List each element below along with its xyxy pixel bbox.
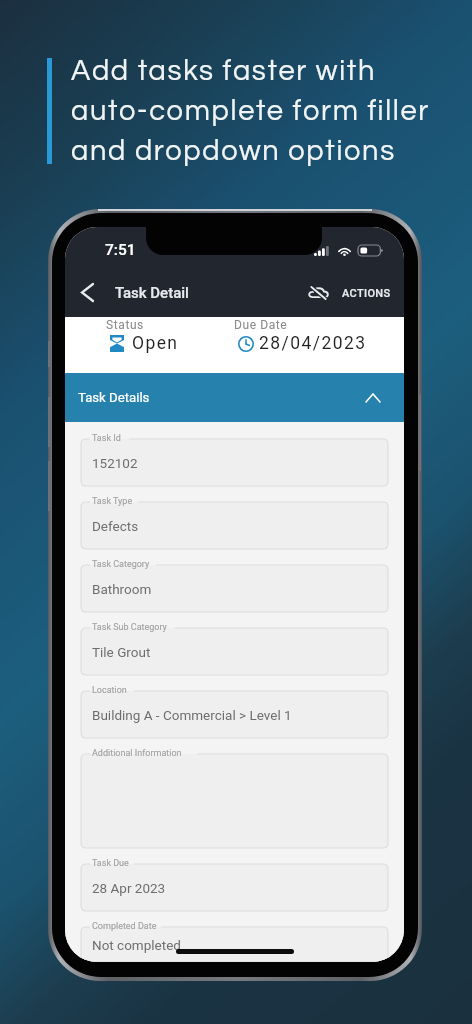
- staticText: Status: [106, 318, 144, 332]
- staticText: Bathroom: [92, 581, 152, 597]
- button[interactable]: Bathroom: [81, 565, 388, 612]
- staticText: Open: [132, 333, 179, 354]
- staticText: Completed Date: [92, 921, 157, 932]
- button[interactable]: Back: [67, 273, 107, 312]
- staticText: Task Due: [92, 858, 129, 869]
- staticText: Task Sub Category: [92, 622, 167, 633]
- staticText: Due Date: [234, 318, 288, 332]
- button[interactable]: Task Details: [65, 373, 404, 422]
- staticText: ACTIONS: [342, 287, 391, 300]
- staticText: Add tasks faster with auto-complete form…: [71, 56, 431, 166]
- staticText: 28 Apr 2023: [92, 880, 166, 896]
- staticText: 7:51: [105, 241, 136, 259]
- button[interactable]: Tile Grout: [81, 628, 388, 675]
- button[interactable]: 28 Apr 2023: [81, 864, 388, 911]
- staticText: Additional Information: [92, 748, 182, 759]
- button[interactable]: 152102: [81, 439, 388, 486]
- staticText: Not completed: [92, 937, 181, 953]
- staticText: Task Details: [78, 390, 150, 405]
- button[interactable]: Building A - Commercial > Level 1: [81, 691, 388, 738]
- button[interactable]: Not completed: [81, 927, 388, 962]
- staticText: Tile Grout: [92, 644, 151, 660]
- button[interactable]: ACTIONS: [296, 277, 404, 309]
- staticText: Building A - Commercial > Level 1: [92, 707, 292, 723]
- staticText: 152102: [92, 455, 138, 471]
- staticText: Task Category: [92, 559, 150, 570]
- button[interactable]: Due Date: [228, 317, 403, 373]
- staticText: 28/04/2023: [259, 333, 367, 354]
- button[interactable]: Defects: [81, 502, 388, 549]
- staticText: Location: [92, 685, 127, 696]
- button[interactable]: [81, 754, 388, 848]
- staticText: Task Id: [92, 433, 121, 444]
- button[interactable]: Status: [100, 317, 216, 373]
- staticText: Task Type: [92, 496, 133, 507]
- staticText: Task Detail: [115, 284, 189, 302]
- staticText: Defects: [92, 518, 139, 534]
